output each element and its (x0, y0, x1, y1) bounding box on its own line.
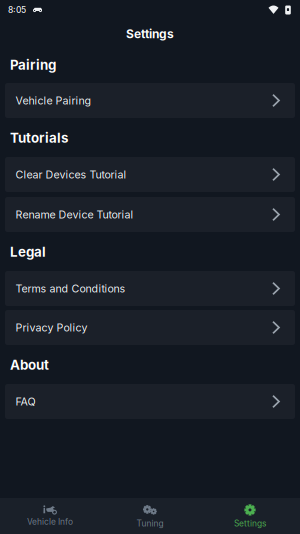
staticText: Settings (126, 27, 174, 41)
staticText: Rename Device Tutorial (15, 208, 133, 221)
staticText: Clear Devices Tutorial (15, 168, 126, 181)
staticText: Vehicle Info (27, 517, 73, 527)
staticText: Legal (10, 244, 46, 260)
button[interactable]: Rename Device Tutorial (5, 197, 295, 232)
button[interactable]: Settings (200, 498, 300, 534)
staticText: 8:05 (8, 5, 26, 15)
button[interactable]: Privacy Policy (5, 310, 295, 345)
staticText: Terms and Conditions (15, 282, 125, 295)
button[interactable]: Terms and Conditions (5, 271, 295, 306)
staticText: Pairing (10, 57, 56, 73)
staticText: About (10, 357, 49, 373)
staticText: Privacy Policy (15, 321, 87, 334)
staticText: Settings (234, 518, 266, 529)
staticText: Tutorials (10, 130, 68, 146)
button[interactable]: Clear Devices Tutorial (5, 157, 295, 192)
button[interactable]: Vehicle Pairing (5, 83, 295, 118)
button[interactable]: Tuning (100, 498, 200, 534)
staticText: Tuning (136, 518, 163, 529)
staticText: FAQ (15, 395, 35, 408)
button[interactable]: FAQ (5, 384, 295, 419)
staticText: Vehicle Pairing (15, 94, 91, 107)
button[interactable]: Vehicle Info (0, 498, 100, 534)
